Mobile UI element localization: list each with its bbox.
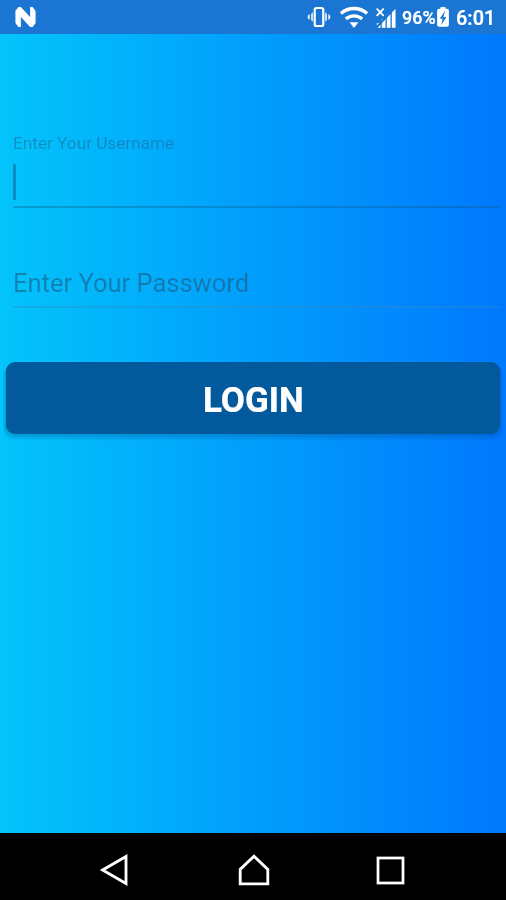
staticText: Enter Your Password [13, 268, 250, 298]
button[interactable]: Home [224, 840, 284, 900]
staticText: 6:01 [456, 6, 496, 29]
button[interactable]: Recent apps [360, 840, 420, 900]
button[interactable]: Enter Your Password [13, 244, 500, 308]
staticText: Enter Your Username [13, 133, 175, 153]
staticText: 96% [402, 7, 436, 28]
button[interactable]: Back [84, 840, 144, 900]
button[interactable]: LOGIN [6, 362, 500, 434]
staticText: LOGIN [203, 380, 304, 421]
button[interactable]: Enter Your Username [13, 128, 500, 208]
